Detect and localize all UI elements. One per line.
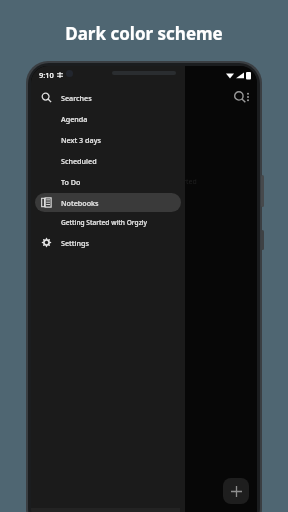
button[interactable]: Next 3 days xyxy=(35,130,181,149)
button[interactable]: To Do xyxy=(35,172,181,191)
button[interactable]: New note xyxy=(223,478,249,504)
button[interactable]: Notebooks xyxy=(35,193,181,212)
staticText: Dark color scheme xyxy=(65,22,223,45)
staticText: Scheduled xyxy=(61,156,97,166)
staticText: Notebooks xyxy=(61,198,99,208)
staticText: Orgzly xyxy=(43,124,95,147)
button[interactable]: Searches xyxy=(35,88,181,107)
staticText: To Do xyxy=(61,177,81,187)
button[interactable]: Settings xyxy=(35,233,181,252)
staticText: 9:10 xyxy=(39,70,54,80)
staticText: Agenda xyxy=(61,114,88,124)
staticText: Welcome to Orgzly! Experience Getting St… xyxy=(43,177,197,187)
staticText: Settings xyxy=(61,238,89,248)
button[interactable]: Getting Started with Orgzly xyxy=(35,214,181,231)
staticText: Getting Started with Orgzly xyxy=(61,218,148,227)
staticText: Next 3 days xyxy=(61,135,101,145)
staticText: Searches xyxy=(61,93,92,103)
button[interactable]: Scheduled xyxy=(35,151,181,170)
button[interactable]: Agenda xyxy=(35,109,181,128)
